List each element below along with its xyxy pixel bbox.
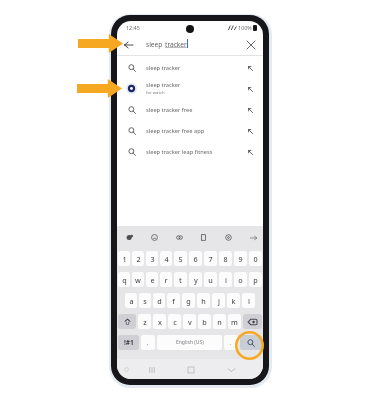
- button[interactable]: Back: [226, 364, 237, 375]
- staticText: p: [253, 275, 258, 285]
- button[interactable]: Shift: [118, 314, 136, 329]
- staticText: g: [186, 296, 191, 306]
- staticText: j: [218, 296, 220, 306]
- button[interactable]: GIF: [174, 232, 185, 243]
- button[interactable]: 4: [160, 251, 172, 266]
- staticText: 2: [136, 254, 141, 264]
- button[interactable]: p: [249, 272, 262, 287]
- button[interactable]: a: [125, 293, 137, 308]
- button[interactable]: Clear search: [244, 38, 257, 51]
- staticText: e: [150, 275, 155, 285]
- staticText: u: [208, 275, 213, 285]
- button[interactable]: sleep tracker leap fitness: [117, 141, 263, 162]
- button[interactable]: f: [167, 293, 180, 308]
- staticText: tracker: [165, 40, 187, 49]
- button[interactable]: 5: [174, 251, 187, 266]
- button[interactable]: r: [160, 272, 172, 287]
- button[interactable]: h: [197, 293, 210, 308]
- button[interactable]: t: [174, 272, 187, 287]
- staticText: f: [172, 296, 175, 306]
- staticText: b: [202, 317, 207, 327]
- button[interactable]: 2: [132, 251, 144, 266]
- button[interactable]: Clipboard: [198, 232, 209, 243]
- button[interactable]: m: [228, 314, 241, 329]
- button[interactable]: More: [248, 232, 259, 243]
- button[interactable]: 7: [204, 251, 217, 266]
- staticText: s: [143, 296, 147, 306]
- button[interactable]: q: [118, 272, 130, 287]
- staticText: sleep tracker: [146, 81, 181, 89]
- button[interactable]: Recent apps: [146, 364, 157, 375]
- staticText: 9: [238, 254, 243, 264]
- staticText: q: [122, 275, 127, 285]
- button[interactable]: 0: [249, 251, 262, 266]
- button[interactable]: 6: [189, 251, 202, 266]
- staticText: sleep tracker leap fitness: [146, 148, 213, 156]
- staticText: 1: [122, 254, 127, 264]
- button[interactable]: sleep tracker free app: [117, 120, 263, 141]
- staticText: 12:45: [126, 24, 140, 31]
- button[interactable]: j: [212, 293, 225, 308]
- button[interactable]: 1: [118, 251, 130, 266]
- button[interactable]: e: [146, 272, 158, 287]
- button[interactable]: Settings: [223, 232, 234, 243]
- button[interactable]: w: [132, 272, 144, 287]
- button[interactable]: u: [204, 272, 217, 287]
- button[interactable]: Back: [122, 38, 135, 51]
- staticText: k: [231, 296, 236, 306]
- button[interactable]: 3: [146, 251, 158, 266]
- staticText: m: [231, 317, 238, 327]
- staticText: i: [225, 275, 227, 285]
- button[interactable]: g: [182, 293, 195, 308]
- button[interactable]: Backspace: [243, 314, 262, 329]
- button[interactable]: i: [219, 272, 232, 287]
- button[interactable]: d: [153, 293, 165, 308]
- button[interactable]: b: [198, 314, 211, 329]
- staticText: sleep tracker: [146, 64, 181, 72]
- button[interactable]: Stickers: [124, 232, 135, 243]
- staticText: for watch: [146, 90, 165, 96]
- button[interactable]: Home: [185, 364, 196, 375]
- button[interactable]: English (US): [157, 335, 222, 350]
- button[interactable]: k: [227, 293, 240, 308]
- staticText: v: [188, 317, 192, 327]
- staticText: 3: [150, 254, 155, 264]
- staticText: w: [135, 275, 141, 285]
- button[interactable]: y: [189, 272, 202, 287]
- button[interactable]: x: [153, 314, 166, 329]
- button[interactable]: sleep tracker: [117, 57, 263, 78]
- staticText: z: [143, 317, 147, 327]
- button[interactable]: c: [168, 314, 181, 329]
- staticText: x: [158, 317, 162, 327]
- staticText: 7: [208, 254, 213, 264]
- button[interactable]: Assistant: [121, 364, 132, 375]
- button[interactable]: sleep tracker: [117, 78, 263, 99]
- button[interactable]: o: [234, 272, 247, 287]
- button[interactable]: n: [213, 314, 226, 329]
- button[interactable]: Symbols: [118, 335, 139, 350]
- staticText: !#1: [124, 338, 134, 347]
- button[interactable]: 9: [234, 251, 247, 266]
- staticText: r: [164, 275, 168, 285]
- staticText: 5: [178, 254, 183, 264]
- staticText: a: [129, 296, 134, 306]
- button[interactable]: sleep tracker free: [117, 99, 263, 120]
- staticText: ,: [147, 339, 149, 347]
- button[interactable]: Search: [240, 335, 262, 350]
- button[interactable]: l: [242, 293, 255, 308]
- button[interactable]: Period: [224, 335, 238, 350]
- button[interactable]: v: [183, 314, 196, 329]
- staticText: 6: [193, 254, 198, 264]
- button[interactable]: 8: [219, 251, 232, 266]
- staticText: English (US): [176, 339, 204, 346]
- button[interactable]: z: [138, 314, 151, 329]
- staticText: 100%: [238, 24, 252, 31]
- button[interactable]: Comma: [141, 335, 155, 350]
- staticText: 0: [253, 254, 258, 264]
- staticText: c: [173, 317, 177, 327]
- staticText: d: [157, 296, 162, 306]
- button[interactable]: Emoji: [149, 232, 160, 243]
- staticText: sleep: [146, 40, 165, 49]
- staticText: o: [238, 275, 243, 285]
- button[interactable]: s: [139, 293, 151, 308]
